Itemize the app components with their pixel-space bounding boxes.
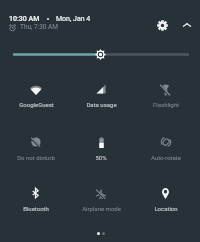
staticText: GoogleGuest	[19, 101, 54, 108]
button[interactable]: Brightness	[0, 44, 200, 65]
button[interactable]: 50%	[69, 136, 133, 162]
button[interactable]: Auto-rotate	[134, 136, 198, 162]
button[interactable]: Airplane mode	[69, 187, 133, 213]
staticText: 10:30 AM	[9, 15, 40, 23]
staticText: Data usage	[86, 101, 117, 108]
button[interactable]: Bluetooth	[4, 187, 68, 213]
button[interactable]: Data usage	[69, 83, 133, 109]
staticText: Airplane mode	[82, 205, 121, 212]
staticText: Do not disturb	[17, 154, 55, 161]
button[interactable]: Flashlight	[134, 83, 198, 109]
button[interactable]: GoogleGuest	[4, 83, 68, 109]
staticText: 50%	[95, 154, 107, 161]
staticText: Bluetooth	[23, 205, 49, 212]
button[interactable]: Settings	[151, 14, 173, 36]
staticText: Thu, 7:30 AM	[20, 23, 58, 31]
button[interactable]: Location	[134, 187, 198, 213]
staticText: Mon, Jan 4	[56, 15, 91, 23]
staticText: Auto-rotate	[151, 154, 181, 161]
button[interactable]: Collapse	[176, 14, 198, 36]
staticText: Location	[154, 205, 178, 212]
button[interactable]: Do not disturb	[4, 136, 68, 162]
staticText: Flashlight	[153, 101, 179, 108]
